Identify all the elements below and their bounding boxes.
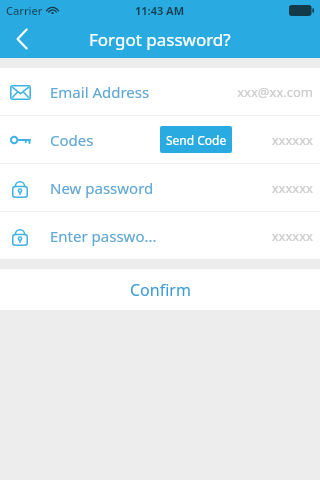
button[interactable]: Back xyxy=(0,20,44,58)
staticText: Send Code xyxy=(166,132,227,148)
button[interactable]: New password xyxy=(0,164,320,211)
staticText: Enter passwo... xyxy=(50,226,157,246)
staticText: xxxxxx xyxy=(271,227,313,245)
staticText: Confirm xyxy=(130,279,191,301)
staticText: Email Address xyxy=(50,82,150,102)
staticText: New password xyxy=(50,178,154,198)
staticText: Carrier xyxy=(6,3,43,18)
button[interactable]: Send Code xyxy=(160,126,232,153)
staticText: Codes xyxy=(50,130,94,150)
staticText: 11:43 AM xyxy=(135,3,185,18)
button[interactable]: Codes xyxy=(0,116,320,163)
button[interactable]: Enter passwo... xyxy=(0,212,320,259)
staticText: xxxxxx xyxy=(271,131,313,149)
staticText: xxxxxx xyxy=(271,179,313,197)
button[interactable]: Confirm xyxy=(0,269,320,310)
button[interactable]: Email Address xyxy=(0,68,320,115)
staticText: Forgot password? xyxy=(89,28,231,51)
staticText: xxx@xx.com xyxy=(237,83,313,101)
